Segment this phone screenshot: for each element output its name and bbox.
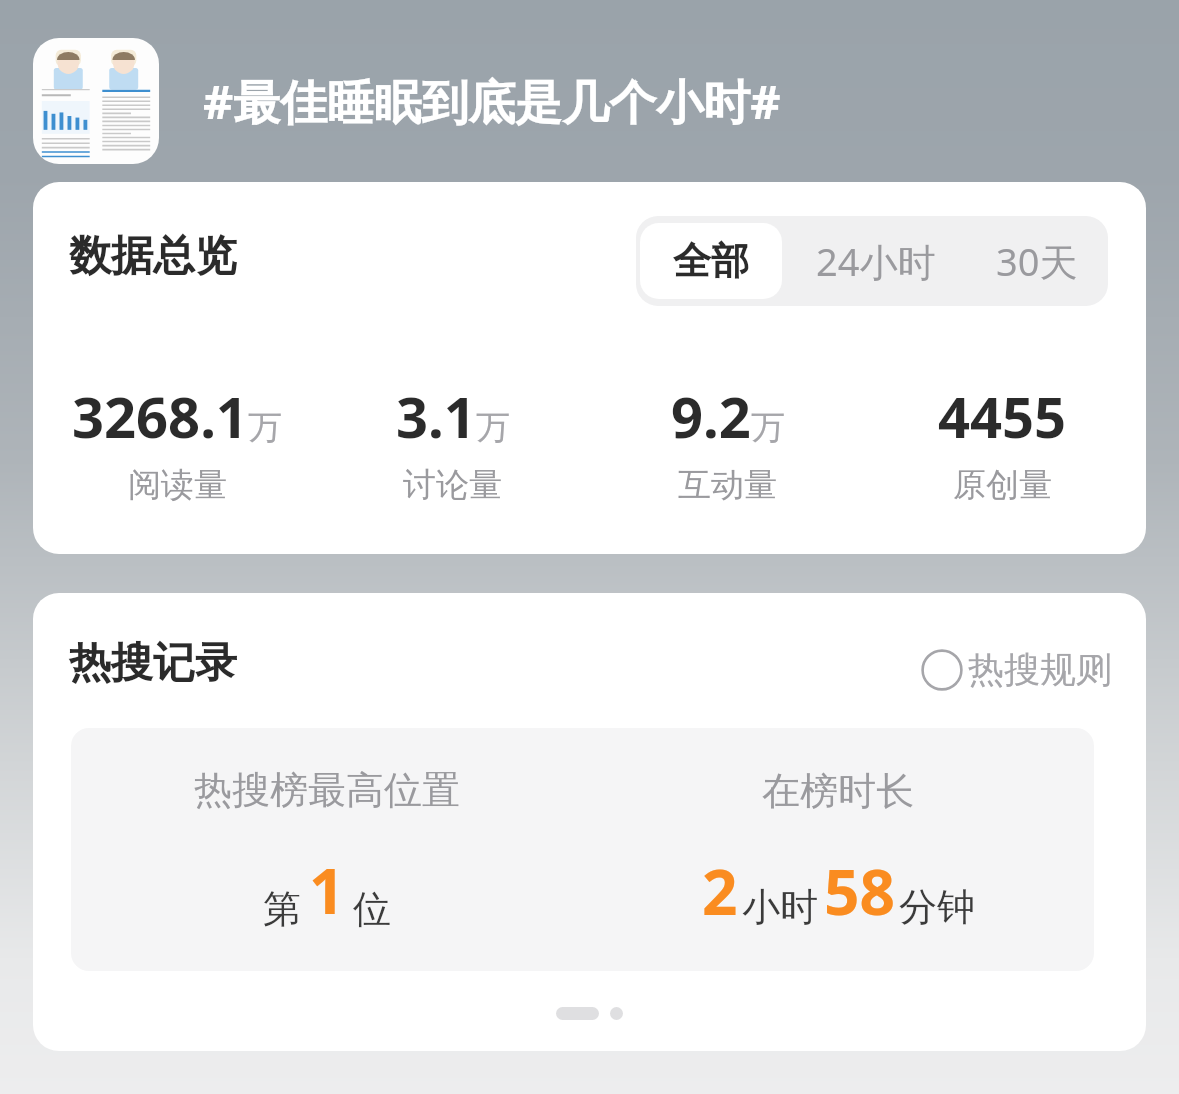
button[interactable]: 9.2	[590, 378, 865, 506]
staticText: 阅读量	[128, 464, 227, 506]
staticText: 全部	[673, 237, 749, 285]
staticText: 热搜记录	[69, 637, 237, 690]
staticText: 位	[353, 885, 391, 933]
button[interactable]: 热搜榜最高位置	[71, 728, 582, 971]
staticText: 2	[702, 849, 738, 933]
staticText: 数据总览	[69, 230, 237, 283]
button[interactable]: 3.1	[315, 378, 590, 506]
button[interactable]: 30天	[966, 217, 1108, 305]
staticText: 58	[824, 849, 895, 933]
staticText: 小时	[742, 883, 818, 931]
staticText: 万	[476, 406, 510, 449]
staticText: 原创量	[953, 464, 1052, 506]
staticText: 4455	[938, 378, 1067, 454]
staticText: 第	[263, 885, 301, 933]
staticText: 互动量	[678, 464, 777, 506]
button[interactable]: 24小时	[786, 217, 966, 305]
staticText: 万	[751, 406, 785, 449]
button[interactable]: 4455	[865, 378, 1140, 506]
staticText: 3.1	[396, 378, 476, 454]
button[interactable]: 热搜规则	[915, 643, 1118, 696]
staticText: 分钟	[899, 883, 975, 931]
staticText: 9.2	[671, 378, 751, 454]
button[interactable]: 全部	[640, 223, 782, 299]
staticText: #最佳睡眠到底是几个小时#	[203, 69, 781, 133]
staticText: 讨论量	[403, 464, 502, 506]
staticText: 在榜时长	[762, 767, 914, 815]
staticText: 万	[248, 406, 282, 449]
button[interactable]: 3268.1	[39, 378, 315, 506]
button[interactable]: 话题配图	[33, 38, 159, 164]
staticText: 3268.1	[72, 378, 248, 454]
staticText: 30天	[996, 235, 1078, 287]
staticText: 1	[309, 848, 345, 932]
button[interactable]: 在榜时长	[582, 728, 1094, 971]
staticText: ?	[1091, 646, 1103, 683]
staticText: 热搜规则	[968, 647, 1112, 692]
staticText: 24小时	[816, 235, 936, 287]
staticText: 热搜榜最高位置	[194, 766, 460, 814]
